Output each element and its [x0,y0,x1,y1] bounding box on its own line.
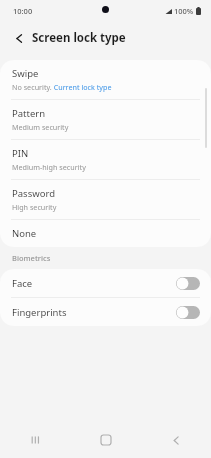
staticText: None [12,227,37,240]
button[interactable]: Back [141,422,211,458]
button[interactable]: PIN [0,140,211,179]
staticText: Password [12,187,55,200]
button[interactable]: Pattern [0,100,211,139]
button[interactable]: Home [71,422,141,458]
button[interactable]: Back [9,28,29,48]
staticText: Pattern [12,107,46,120]
button[interactable]: Swipe [0,60,211,99]
staticText: Screen lock type [32,30,126,46]
staticText: Medium-high security [12,162,86,172]
button[interactable]: Fingerprints [0,298,211,326]
button[interactable]: Face [0,269,211,297]
staticText: PIN [12,147,29,160]
staticText: High security [12,202,57,212]
staticText: 100% [174,6,194,16]
staticText: Swipe [12,67,39,80]
button[interactable]: Password [0,180,211,219]
staticText: Medium security [12,122,69,132]
staticText: No security. Current lock type [12,82,112,92]
staticText: Biometrics [12,253,51,263]
button[interactable]: Recent apps [0,422,71,458]
staticText: Face [12,277,33,290]
staticText: Fingerprints [12,306,67,319]
staticText: 10:00 [13,6,33,16]
button[interactable]: None [0,220,211,247]
